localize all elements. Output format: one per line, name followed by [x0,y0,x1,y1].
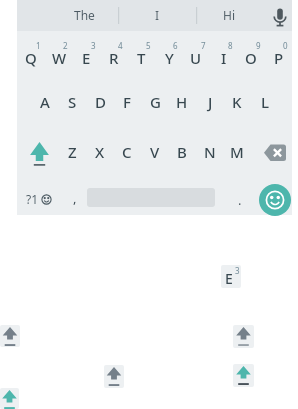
button[interactable]: A [31,80,59,124]
button[interactable] [233,364,254,387]
button[interactable]: . [232,188,248,212]
staticText: E [82,48,91,68]
staticText: Hi [223,7,235,23]
staticText: Q [25,48,37,68]
staticText: T [137,48,146,68]
staticText: 6 [173,40,178,51]
staticText: K [232,92,242,112]
button[interactable]: K [223,80,251,124]
button[interactable]: M [223,130,251,174]
button[interactable]: E [72,38,100,78]
button[interactable]: X [86,130,114,174]
staticText: V [150,142,160,162]
staticText: F [123,92,131,112]
button[interactable]: ?1 [17,169,58,215]
staticText: M [230,142,244,162]
button[interactable]: T [127,38,155,78]
button[interactable]: , [65,183,85,213]
staticText: P [274,48,284,68]
button[interactable] [266,2,294,30]
staticText: J [208,92,213,112]
staticText: S [68,92,77,112]
staticText: H [176,92,188,112]
staticText: Y [165,48,174,68]
button[interactable]: F [113,80,141,124]
button[interactable]: C [113,130,141,174]
button[interactable]: Q [17,38,45,78]
button[interactable]: Z [58,130,86,174]
button[interactable] [0,388,19,409]
staticText: 9 [256,40,261,51]
button[interactable]: L [251,80,279,124]
button[interactable] [0,325,20,347]
button[interactable]: G [141,80,169,124]
button[interactable]: B [168,130,196,174]
staticText: The [74,7,95,23]
staticText: B [177,142,187,162]
staticText: 0 [283,40,288,51]
staticText: I [221,48,227,68]
button[interactable]: Hi [204,3,254,27]
staticText: R [109,48,119,68]
button[interactable]: D [86,80,114,124]
button[interactable]: O [237,38,265,78]
staticText: 5 [146,40,151,51]
staticText: I [155,7,160,23]
staticText: W [52,48,67,68]
button[interactable]: V [141,130,169,174]
button[interactable] [104,365,124,388]
staticText: G [150,92,161,112]
staticText: . [238,191,242,209]
staticText: C [122,142,132,162]
button[interactable]: J [196,80,224,124]
button[interactable]: W [45,38,73,78]
staticText: 7 [201,40,206,51]
button[interactable]: I [132,3,182,27]
button[interactable] [17,123,58,169]
staticText: U [190,48,202,68]
staticText: 3 [235,265,240,275]
staticText: 2 [63,40,68,51]
staticText: O [245,48,257,68]
button[interactable] [259,184,291,216]
staticText: A [40,92,50,112]
button[interactable]: Y [155,38,183,78]
staticText: X [95,142,105,162]
staticText: 3 [91,40,96,51]
button[interactable]: H [168,80,196,124]
button[interactable]: U [182,38,210,78]
button[interactable] [251,123,292,169]
staticText: , [73,189,77,207]
button[interactable]: S [58,80,86,124]
staticText: 8 [228,40,233,51]
button[interactable]: P [265,38,293,78]
button[interactable]: The [54,3,114,27]
button[interactable]: N [196,130,224,174]
button[interactable] [233,325,254,348]
staticText: 4 [118,40,123,51]
staticText: N [204,142,216,162]
staticText: E [225,269,233,288]
button[interactable]: I [210,38,238,78]
button[interactable]: R [100,38,128,78]
staticText: L [261,92,270,112]
staticText: Z [68,142,77,162]
staticText: D [95,92,106,112]
staticText: ?1 [26,191,39,207]
staticText: 1 [36,40,41,51]
